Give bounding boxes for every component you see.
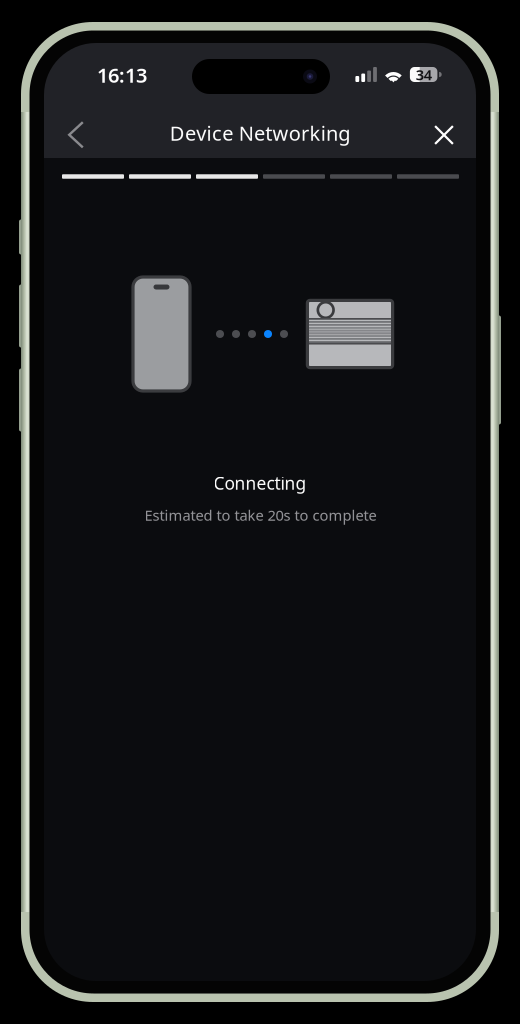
staticText: 34 [416,65,432,84]
button[interactable]: Close [417,108,471,162]
staticText: Connecting [213,471,306,494]
staticText: Estimated to take 20s to complete [144,505,376,525]
button[interactable]: Back [49,108,103,162]
staticText: 16:13 [97,62,147,88]
staticText: Device Networking [170,120,350,146]
